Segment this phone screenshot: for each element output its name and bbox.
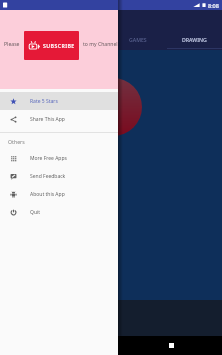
button[interactable]: Share This App bbox=[0, 110, 118, 128]
button[interactable]: About this App bbox=[0, 185, 118, 203]
staticText: GAMES bbox=[129, 36, 147, 43]
staticText: Share This App bbox=[30, 116, 65, 123]
button[interactable]: Quit bbox=[0, 203, 118, 221]
staticText: Others bbox=[8, 138, 25, 145]
button[interactable]: Home bbox=[102, 336, 121, 355]
button[interactable]: Send Feedback bbox=[0, 167, 118, 185]
staticText: DRAWING bbox=[182, 36, 207, 43]
staticText: Rate 5 Stars bbox=[30, 98, 58, 105]
button[interactable]: FUN bbox=[0, 28, 55, 50]
button[interactable]: KIDS bbox=[55, 28, 110, 50]
staticText: Please bbox=[4, 41, 20, 48]
button[interactable]: SUBSCRIBE bbox=[24, 31, 79, 60]
button[interactable]: DRAWING bbox=[166, 28, 222, 50]
staticText: SUBSCRIBE bbox=[43, 42, 75, 49]
button[interactable]: Recent apps bbox=[162, 336, 181, 355]
staticText: Quit bbox=[30, 209, 41, 216]
staticText: Send Feedback bbox=[30, 173, 66, 180]
staticText: About this App bbox=[30, 191, 65, 198]
staticText: More Free Apps bbox=[30, 155, 67, 162]
button[interactable]: Rate 5 Stars bbox=[0, 92, 118, 110]
button[interactable]: GAMES bbox=[110, 28, 166, 50]
staticText: KIDS bbox=[77, 36, 89, 43]
staticText: 8:08 bbox=[208, 2, 219, 9]
button[interactable]: More Free Apps bbox=[0, 149, 118, 167]
staticText: FUN bbox=[22, 36, 33, 43]
staticText: to my Channel bbox=[83, 41, 118, 48]
